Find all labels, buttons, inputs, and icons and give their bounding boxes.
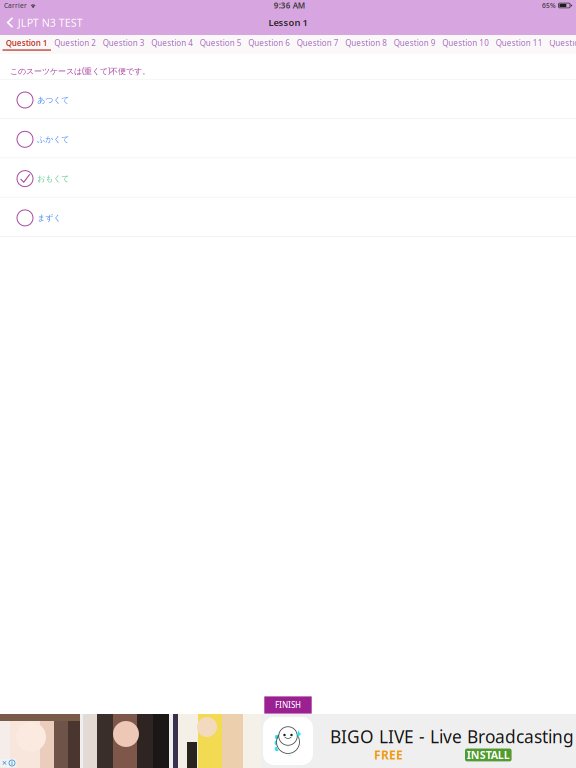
button[interactable]: Question 12 bbox=[546, 35, 576, 54]
button[interactable]: Question 1 bbox=[2, 35, 51, 54]
staticText: JLPT N3 TEST bbox=[18, 15, 83, 30]
button[interactable]: Question 9 bbox=[390, 35, 439, 54]
staticText: Question 6 bbox=[248, 37, 290, 48]
staticText: Question 7 bbox=[297, 37, 339, 48]
button[interactable]: まずく bbox=[0, 198, 576, 237]
staticText: ふかくて bbox=[37, 134, 69, 144]
staticText: Lesson 1 bbox=[268, 16, 307, 29]
staticText: Question 9 bbox=[394, 37, 436, 48]
staticText: Question 10 bbox=[442, 37, 489, 48]
staticText: FREE bbox=[374, 747, 403, 763]
staticText: Question 8 bbox=[345, 37, 387, 48]
staticText: i bbox=[11, 759, 13, 767]
staticText: FINISH bbox=[275, 700, 301, 710]
staticText: BIGO LIVE - Live Broadcasting bbox=[330, 725, 574, 748]
button[interactable]: ふかくて bbox=[0, 119, 576, 158]
staticText: おもくて bbox=[37, 174, 69, 183]
staticText: Carrier bbox=[4, 1, 27, 10]
button[interactable]: BIGO LIVE - Live Broadcasting bbox=[0, 714, 576, 768]
staticText: Question 12 bbox=[549, 37, 576, 48]
button[interactable]: JLPT N3 TEST bbox=[0, 13, 83, 32]
button[interactable]: Question 3 bbox=[99, 35, 148, 54]
staticText: Question 5 bbox=[200, 37, 242, 48]
button[interactable]: Question 7 bbox=[293, 35, 342, 54]
staticText: Question 4 bbox=[151, 37, 193, 48]
button[interactable]: Question 8 bbox=[342, 35, 390, 54]
button[interactable]: Question 11 bbox=[492, 35, 546, 54]
button[interactable]: Question 10 bbox=[439, 35, 492, 54]
button[interactable]: Close ad bbox=[0, 759, 16, 767]
staticText: ✕ bbox=[1, 759, 7, 767]
staticText: Question 2 bbox=[54, 37, 96, 48]
button[interactable]: Question 4 bbox=[148, 35, 196, 54]
button[interactable]: Question 5 bbox=[196, 35, 245, 54]
staticText: Question 3 bbox=[103, 37, 145, 48]
staticText: あつくて bbox=[37, 95, 69, 105]
staticText: Question 11 bbox=[496, 37, 543, 48]
button[interactable]: Question 2 bbox=[51, 35, 99, 54]
button[interactable]: あつくて bbox=[0, 80, 576, 119]
staticText: 9:36 AM bbox=[274, 0, 305, 11]
staticText: まずく bbox=[37, 213, 61, 223]
staticText: INSTALL bbox=[467, 748, 510, 762]
button[interactable]: おもくて bbox=[0, 158, 576, 198]
staticText: Question 1 bbox=[6, 37, 48, 48]
button[interactable]: Question 6 bbox=[245, 35, 293, 54]
staticText: 65% bbox=[542, 1, 556, 10]
staticText: このスーツケースは(重くて)不便です。 bbox=[10, 66, 150, 76]
button[interactable]: FINISH bbox=[264, 696, 312, 714]
